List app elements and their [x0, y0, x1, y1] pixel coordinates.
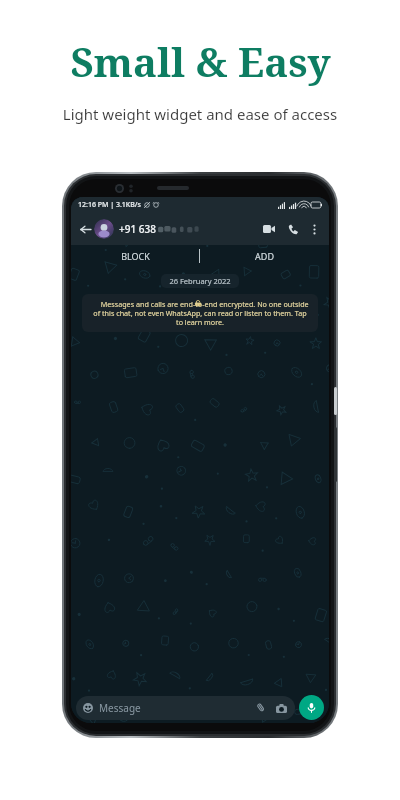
button[interactable]: Messages and calls are end-to-end encryp…: [82, 294, 318, 332]
button[interactable]: Camera: [274, 701, 288, 715]
staticText: Message: [99, 701, 141, 715]
button[interactable]: Call: [283, 219, 303, 239]
staticText: ADD: [255, 250, 274, 262]
staticText: 12:16 PM | 3.1KB/s: [78, 200, 141, 210]
staticText: Messages and calls are end-to-end encryp…: [89, 299, 311, 327]
staticText: +91 638: [119, 222, 156, 236]
staticText: BLOCK: [121, 250, 150, 262]
staticText: Small & Easy: [70, 34, 331, 88]
button[interactable]: ADD: [200, 245, 329, 267]
button[interactable]: Voice message: [299, 695, 324, 720]
button[interactable]: More options: [305, 220, 323, 238]
staticText: Light weight widget and ease of access: [60, 104, 340, 124]
button[interactable]: Back: [77, 221, 93, 237]
staticText: 26 February 2022: [169, 276, 231, 286]
button[interactable]: Attach: [254, 701, 268, 715]
button[interactable]: BLOCK: [71, 245, 199, 267]
button[interactable]: Contact photo: [94, 219, 114, 239]
button[interactable]: Message: [76, 696, 295, 720]
button[interactable]: Video call: [259, 219, 279, 239]
